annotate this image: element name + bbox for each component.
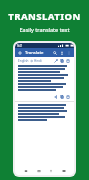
staticText: Easily translate text [19,26,70,33]
staticText: Translate [25,50,44,56]
button[interactable]: Swap languages [53,58,59,64]
button[interactable]: Share text [65,94,71,100]
staticText: Hindi [34,59,42,63]
button[interactable]: Share [65,58,71,64]
staticText: 9:41 [17,44,23,48]
button[interactable]: Microphone [58,49,65,56]
button[interactable]: Voice [46,166,55,175]
button[interactable]: Conversation [59,166,68,175]
button[interactable]: Search [51,49,58,56]
button[interactable]: Menu [17,50,23,56]
button[interactable]: Copy [59,58,65,64]
button[interactable]: Copy text [59,94,65,100]
button[interactable]: Home [21,166,30,175]
button[interactable]: Camera [34,166,43,175]
staticText: TRANSLATION [8,10,81,23]
button[interactable]: More options [65,49,72,56]
button[interactable]: Speak [53,94,59,100]
staticText: English [18,59,29,63]
button[interactable]: English [18,59,42,63]
